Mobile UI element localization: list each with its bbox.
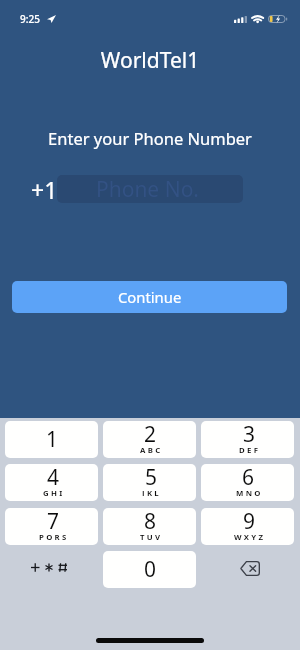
staticText: 4 [47,464,60,492]
staticText: MNO [236,488,263,496]
button[interactable]: 1 [5,421,98,458]
button[interactable]: 2 [103,421,196,458]
staticText: 5 [145,464,158,492]
button[interactable]: 3 [201,421,294,458]
button[interactable]: 4 [5,464,98,501]
staticText: ABC [140,445,163,453]
staticText: 9:25 [20,12,40,26]
button[interactable]: Continue [12,281,287,313]
staticText: 8 [144,508,157,536]
staticText: 2 [144,421,157,449]
staticText: Enter your Phone Number [0,127,300,149]
staticText: PQRS [39,532,69,540]
staticText: WorldTel1 [0,46,300,75]
button[interactable]: 8 [103,508,196,545]
button[interactable]: 6 [201,464,294,501]
staticText: 3 [243,421,256,449]
button[interactable]: 7 [5,508,98,545]
staticText: JKL [142,488,162,496]
staticText: 0 [144,555,157,584]
button[interactable]: 0 [103,551,196,588]
button[interactable]: Phone No. [57,175,243,203]
staticText: 6 [242,464,255,492]
staticText: DEF [239,445,261,453]
button[interactable]: 5 [103,464,196,501]
staticText: +1 [31,174,58,205]
staticText: TUV [140,532,163,540]
staticText: WXYZ [234,532,266,540]
staticText: Continue [118,287,182,307]
button[interactable]: Symbols plus asterisk hash [5,551,98,588]
staticText: 1 [46,425,59,454]
button[interactable]: Backspace [201,551,294,588]
staticText: GHI [43,488,65,496]
button[interactable]: 9 [201,508,294,545]
staticText: 9 [243,508,256,536]
staticText: 7 [47,508,60,536]
staticText: Phone No. [96,175,199,203]
